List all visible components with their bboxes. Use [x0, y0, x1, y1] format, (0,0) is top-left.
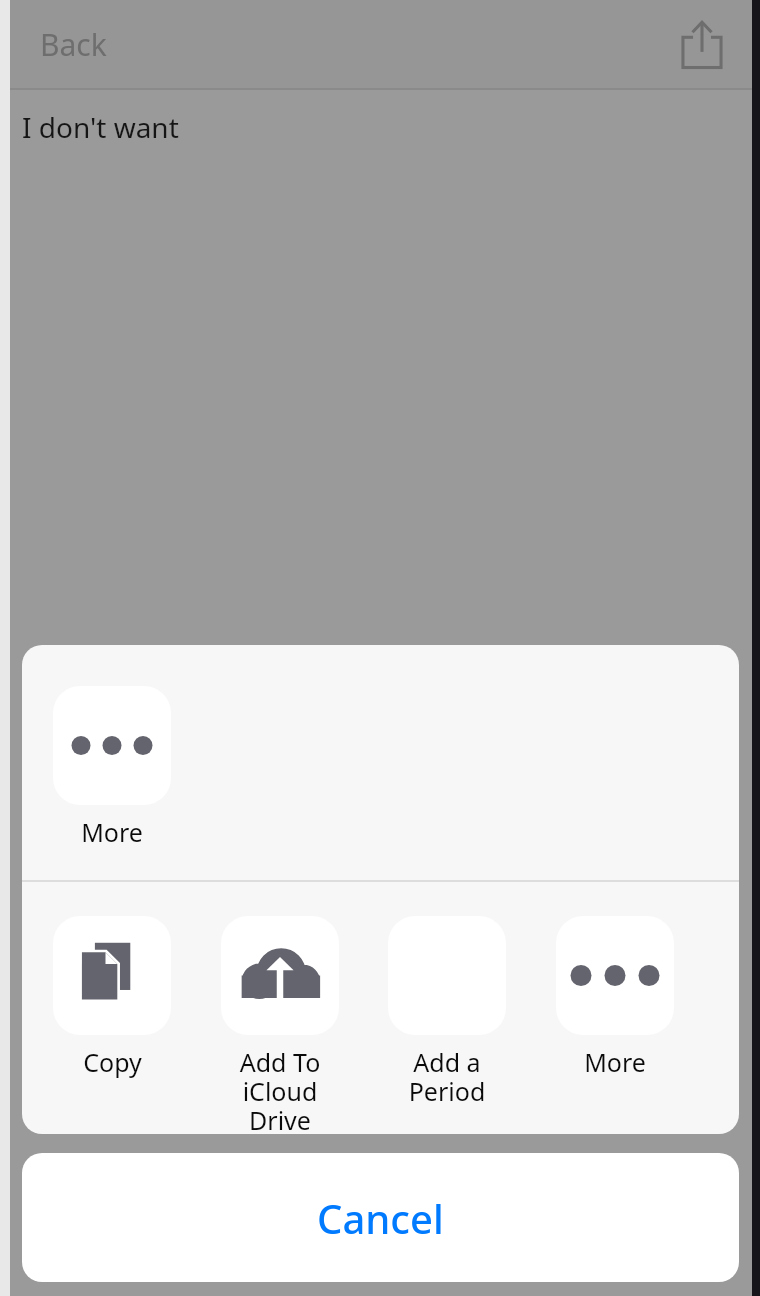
button[interactable]: Add To iCloud Drive — [221, 916, 339, 1134]
button[interactable]: Share — [674, 16, 730, 72]
staticText: Add To iCloud Drive — [221, 1045, 339, 1134]
staticText: More — [584, 1045, 646, 1079]
button[interactable]: Copy — [53, 916, 171, 1079]
button[interactable]: Back — [40, 24, 107, 65]
staticText: I don't want — [22, 108, 179, 146]
staticText: Add a Period — [388, 1045, 506, 1108]
staticText: Cancel — [317, 1191, 444, 1245]
staticText: More — [81, 815, 143, 849]
button[interactable]: Cancel — [22, 1153, 739, 1282]
staticText: Copy — [83, 1045, 142, 1079]
button[interactable]: Add a Period — [388, 916, 506, 1108]
button[interactable]: More — [556, 916, 674, 1079]
button[interactable]: More — [53, 686, 171, 849]
